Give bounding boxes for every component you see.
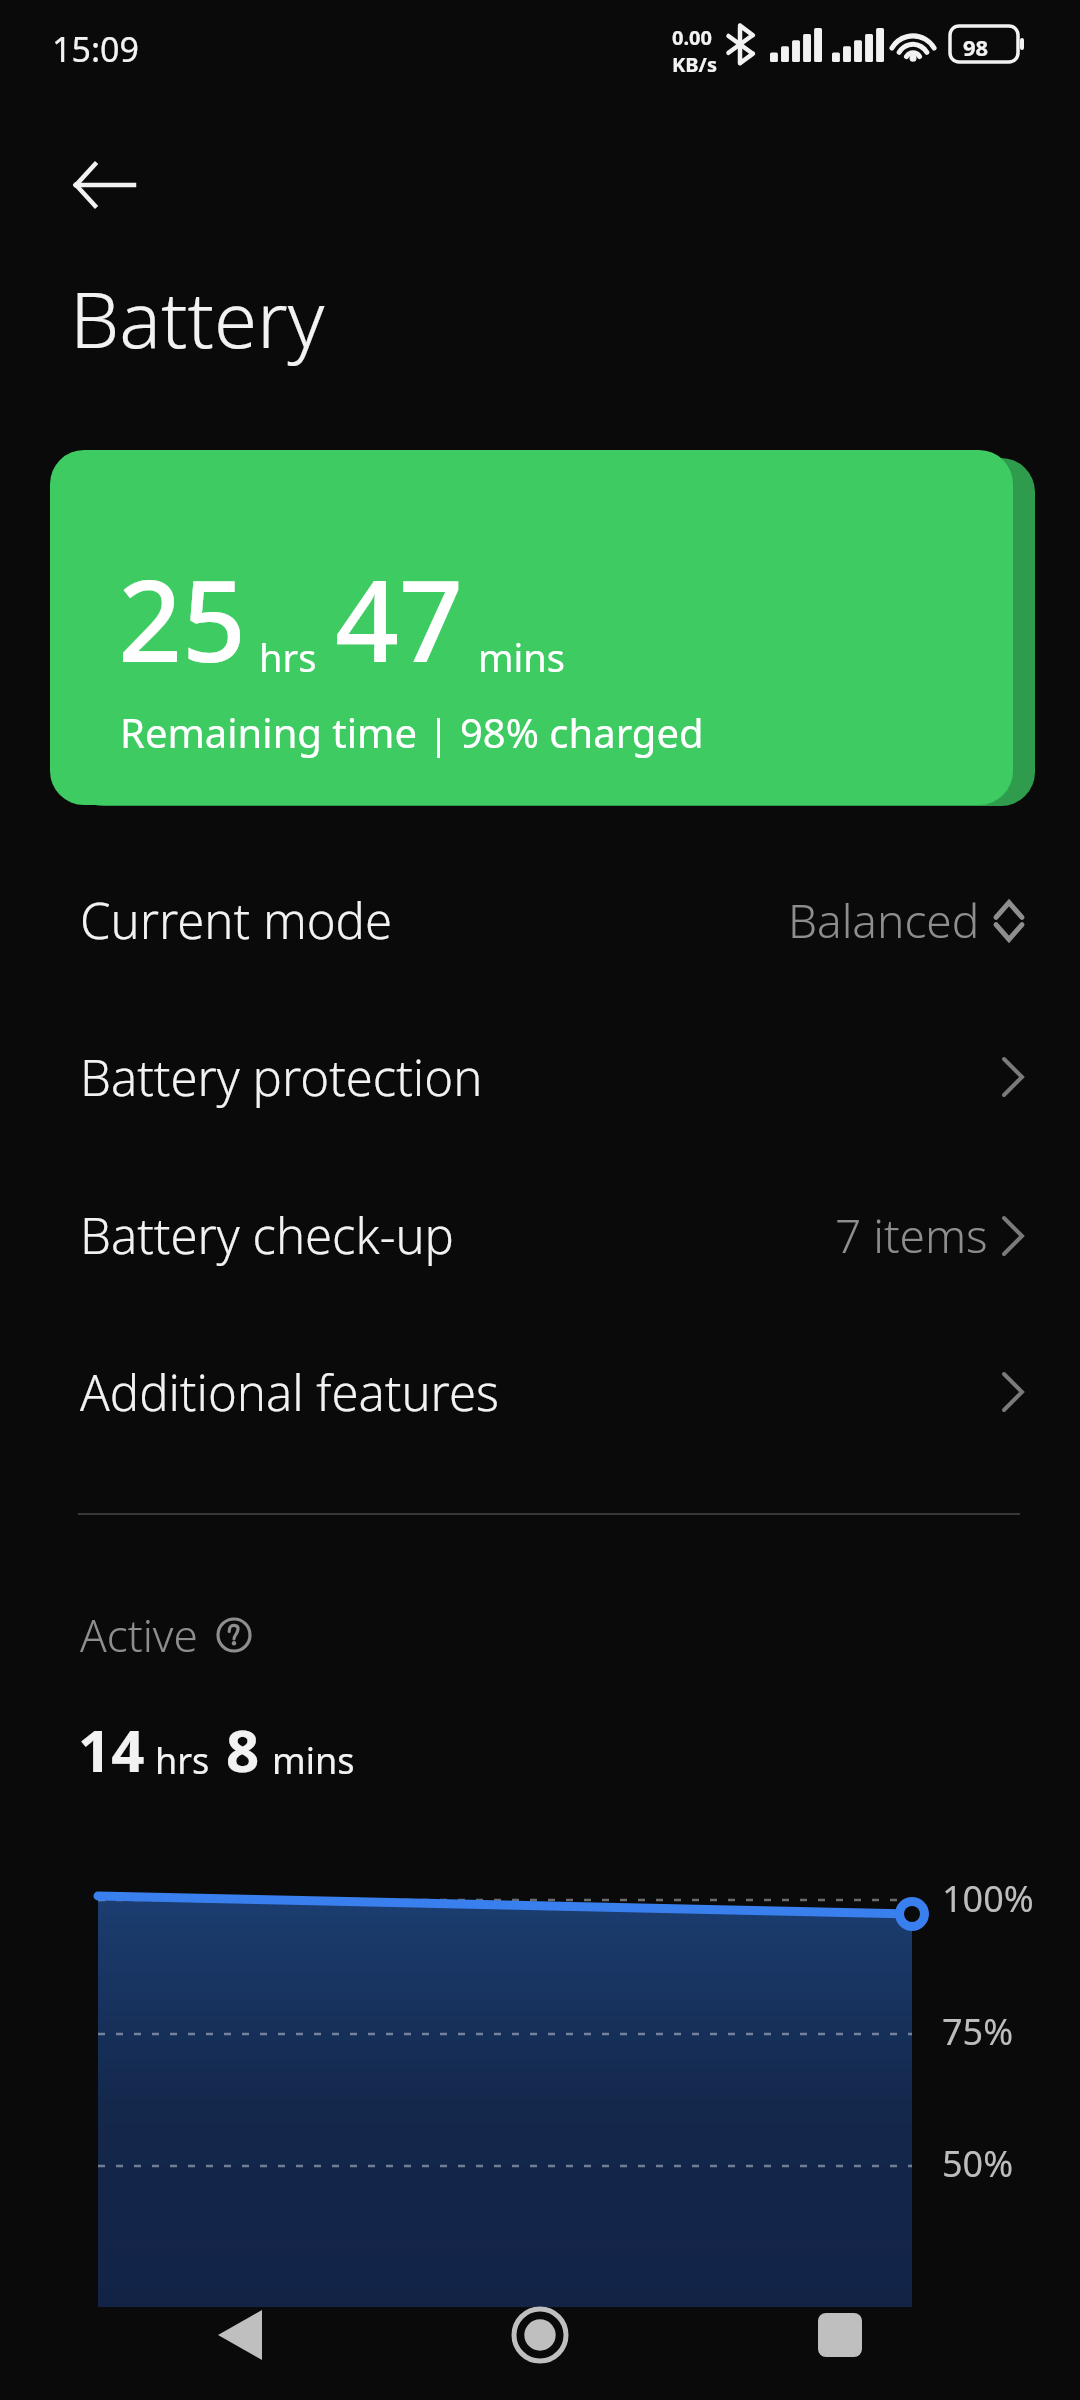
button[interactable]: Recent apps — [780, 2285, 900, 2385]
button[interactable]: Additional features — [0, 1342, 1080, 1442]
staticText: Balanced — [788, 889, 980, 952]
button[interactable]: Battery protection — [0, 1027, 1080, 1127]
staticText: Battery check-up — [80, 1202, 454, 1269]
staticText: 8 — [226, 1710, 260, 1789]
staticText: KB/s — [672, 51, 717, 78]
staticText: 47 — [335, 542, 464, 695]
staticText: 15:09 — [52, 26, 139, 72]
staticText: Battery — [70, 265, 325, 371]
staticText: 0.00 — [672, 24, 712, 51]
button[interactable]: Current mode — [0, 870, 1080, 970]
staticText: 7 items — [835, 1204, 988, 1267]
button[interactable]: Help about active time — [212, 1613, 256, 1657]
staticText: mins — [272, 1736, 355, 1785]
staticText: hrs — [155, 1736, 210, 1785]
staticText: Additional features — [80, 1359, 499, 1426]
staticText: 75% — [942, 2007, 1014, 2056]
staticText: 14 — [78, 1710, 145, 1789]
button[interactable]: Back — [50, 130, 160, 240]
staticText: Current mode — [80, 887, 392, 954]
button[interactable]: Home — [480, 2285, 600, 2385]
button[interactable]: 25 — [50, 450, 1013, 805]
staticText: 50% — [942, 2139, 1014, 2188]
staticText: Active — [80, 1605, 198, 1665]
staticText: 98 — [963, 32, 989, 62]
staticText: hrs — [259, 631, 317, 683]
staticText: Remaining time | 98% charged — [120, 705, 704, 759]
staticText: 25 — [118, 542, 247, 695]
button[interactable]: Back — [180, 2285, 300, 2385]
staticText: 100% — [942, 1874, 1034, 1923]
staticText: mins — [478, 631, 566, 683]
staticText: Battery protection — [80, 1044, 483, 1111]
button[interactable]: Battery check-up — [0, 1185, 1080, 1285]
